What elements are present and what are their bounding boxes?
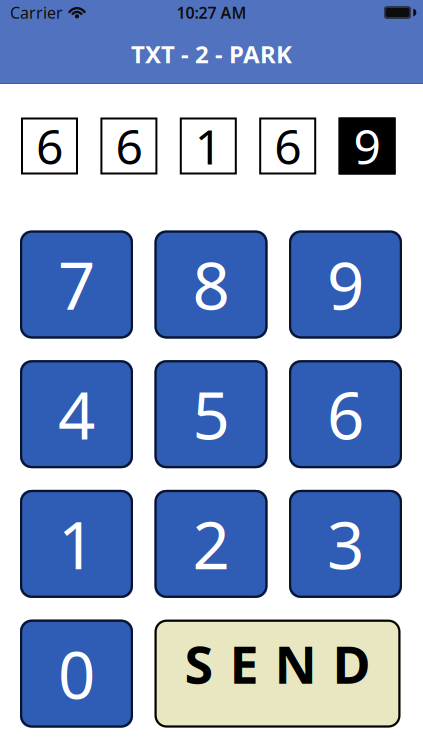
- staticText: 5: [192, 371, 229, 458]
- button[interactable]: SEND: [154, 620, 400, 728]
- staticText: 7: [58, 241, 95, 328]
- staticText: Carrier: [10, 2, 63, 23]
- staticText: 8: [192, 241, 229, 328]
- staticText: 4: [58, 371, 95, 458]
- staticText: 6: [36, 114, 63, 178]
- button[interactable]: 2: [154, 490, 267, 598]
- staticText: 6: [327, 371, 364, 458]
- staticText: 3: [327, 500, 364, 587]
- button[interactable]: 3: [289, 490, 402, 598]
- staticText: 0: [58, 630, 95, 717]
- button[interactable]: 5: [154, 360, 267, 468]
- button[interactable]: 6: [289, 360, 402, 468]
- staticText: 6: [115, 114, 142, 178]
- staticText: TXT - 2 - PARK: [131, 38, 292, 70]
- button[interactable]: 4: [20, 360, 133, 468]
- staticText: 6: [274, 114, 301, 178]
- button[interactable]: 9: [289, 230, 402, 338]
- staticText: 1: [195, 114, 222, 178]
- staticText: SEND: [184, 629, 370, 698]
- button[interactable]: 8: [154, 230, 267, 338]
- staticText: 10:27 AM: [176, 2, 246, 23]
- staticText: 9: [327, 241, 364, 328]
- staticText: 9: [354, 114, 381, 178]
- staticText: 2: [192, 500, 229, 587]
- button[interactable]: 0: [20, 620, 133, 728]
- button[interactable]: 7: [20, 230, 133, 338]
- staticText: 1: [58, 500, 95, 587]
- button[interactable]: 1: [20, 490, 133, 598]
